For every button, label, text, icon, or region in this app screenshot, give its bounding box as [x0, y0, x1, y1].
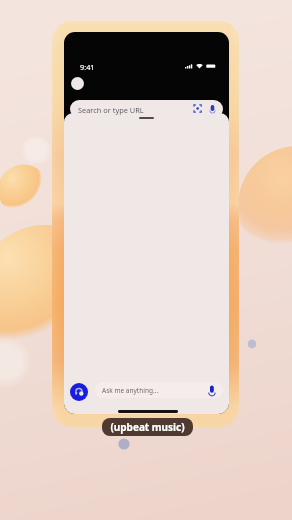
button[interactable]: Ask me anything... — [95, 382, 223, 398]
button[interactable]: Search or type URL — [70, 100, 223, 118]
button[interactable]: Account — [71, 77, 84, 90]
staticText: 9:41 — [80, 62, 95, 72]
staticText: Ask me anything... — [102, 386, 159, 395]
button[interactable]: Assistant — [70, 383, 88, 401]
staticText: (upbeat music) — [110, 420, 185, 434]
staticText: Search or type URL — [78, 105, 144, 115]
